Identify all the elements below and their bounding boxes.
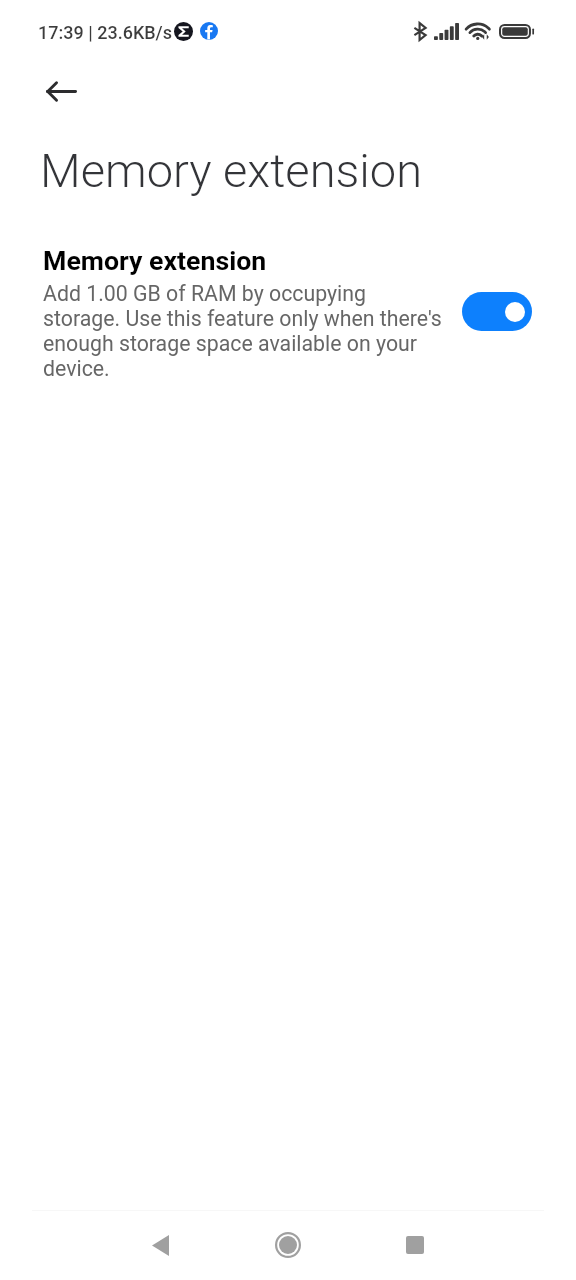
- button[interactable]: Back: [131, 1216, 189, 1274]
- staticText: 17:39 | 23.6KB/s: [38, 20, 173, 44]
- button[interactable]: Back: [33, 63, 89, 119]
- button[interactable]: Recents: [386, 1216, 444, 1274]
- button[interactable]: Memory extension toggle: [462, 292, 532, 331]
- staticText: Memory extension: [40, 143, 423, 199]
- staticText: Add 1.00 GB of RAM by occupying storage.…: [43, 281, 442, 381]
- button[interactable]: Memory extension: [0, 232, 576, 392]
- button[interactable]: Home: [259, 1216, 317, 1274]
- staticText: Memory extension: [43, 246, 267, 276]
